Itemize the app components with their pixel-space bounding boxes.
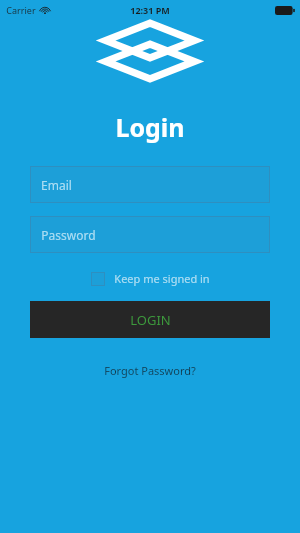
staticText: 12:31 PM	[130, 4, 170, 16]
staticText: Carrier	[6, 4, 36, 16]
staticText: Email	[41, 177, 72, 193]
button[interactable]: Keep me signed in	[89, 269, 212, 288]
staticText: Forgot Password?	[104, 363, 196, 378]
other: Battery full	[275, 6, 295, 15]
button[interactable]: LOGIN	[30, 301, 270, 338]
button[interactable]: Email	[30, 166, 270, 203]
staticText: Login	[115, 110, 185, 144]
other: Wi-Fi signal	[40, 5, 50, 15]
button[interactable]: Password	[30, 216, 270, 253]
button[interactable]: Forgot Password?	[98, 360, 202, 381]
staticText: Keep me signed in	[114, 271, 210, 286]
staticText: LOGIN	[130, 311, 171, 329]
staticText: Password	[41, 227, 96, 243]
